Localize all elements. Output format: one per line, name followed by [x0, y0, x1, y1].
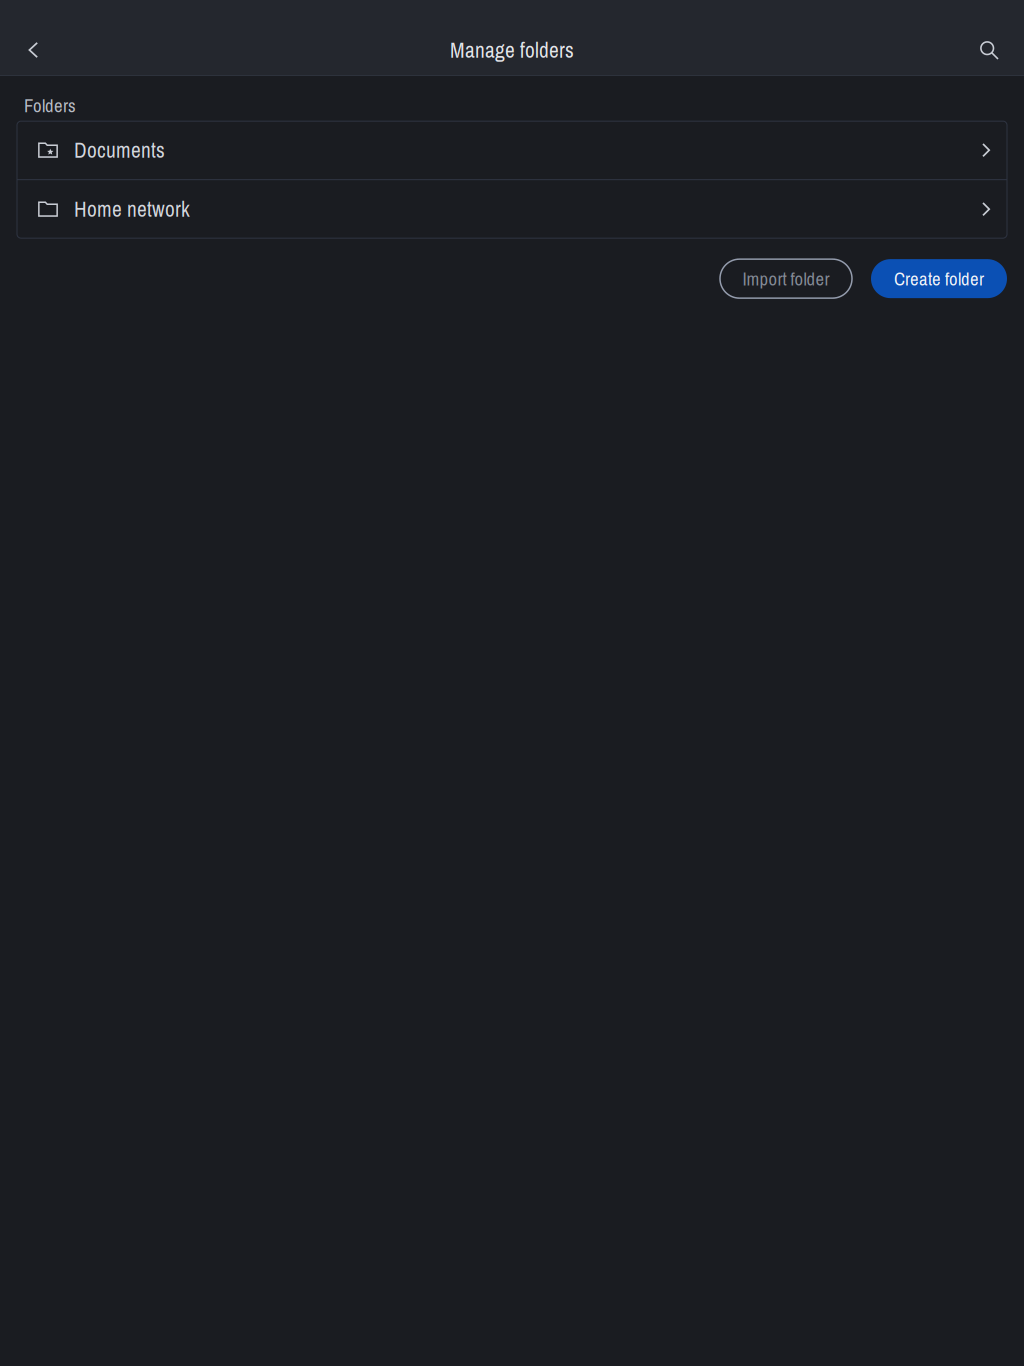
staticText: Home network — [74, 195, 190, 223]
button[interactable]: Documents — [17, 121, 1007, 179]
staticText: Folders — [24, 93, 76, 118]
button[interactable]: Import folder — [720, 259, 852, 298]
staticText: Manage folders — [450, 36, 574, 64]
button[interactable]: Back — [9, 26, 57, 74]
staticText: Import folder — [742, 266, 829, 291]
button[interactable]: Search — [965, 26, 1013, 74]
button[interactable]: Create folder — [871, 259, 1007, 298]
staticText: Create folder — [894, 266, 984, 291]
button[interactable]: Home network — [17, 180, 1007, 238]
staticText: Documents — [74, 136, 165, 164]
